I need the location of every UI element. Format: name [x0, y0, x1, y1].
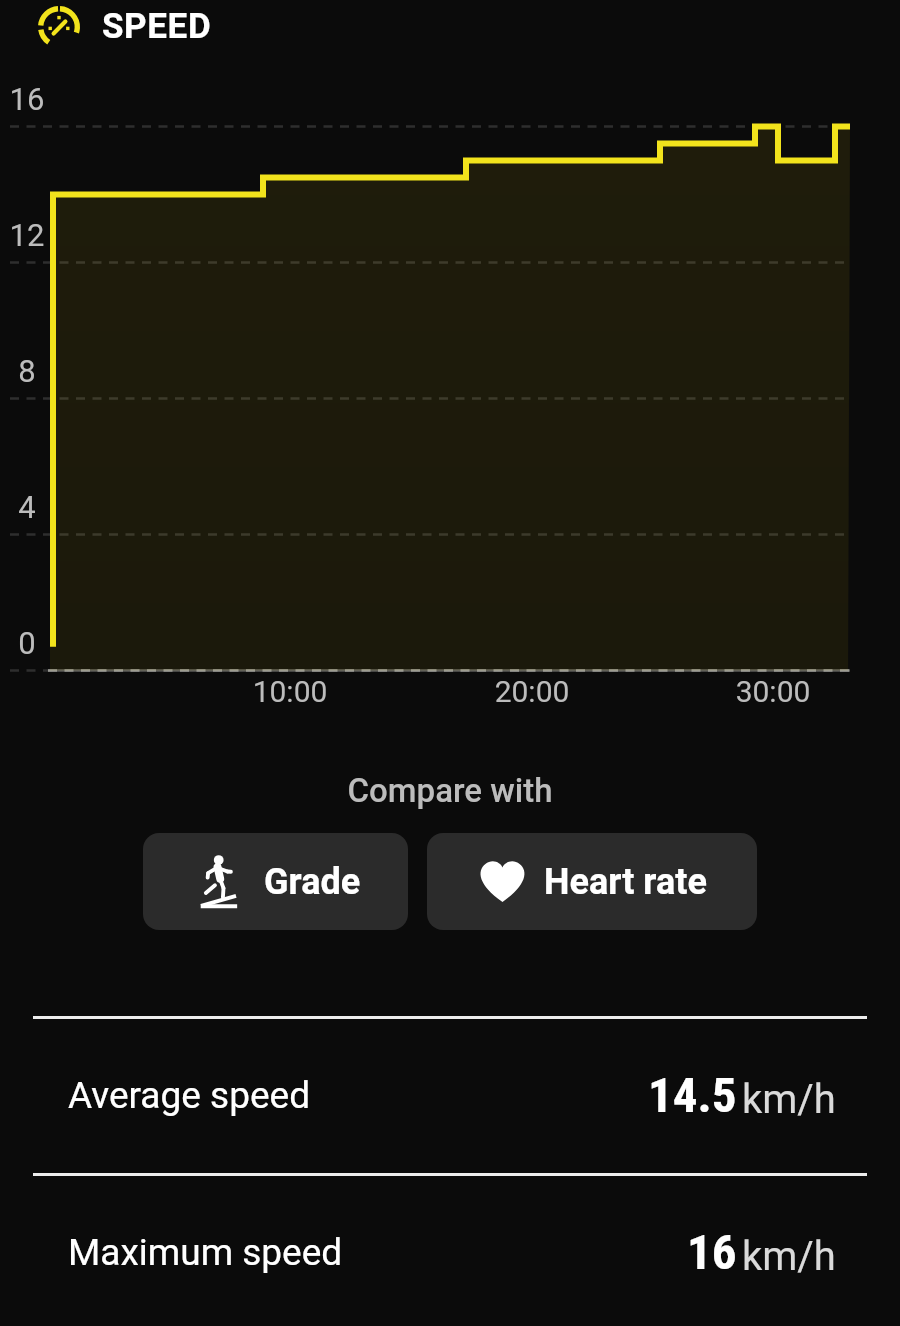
button[interactable]: Average speed: [0, 1017, 900, 1174]
staticText: 30:00: [703, 674, 843, 709]
staticText: 12: [2, 217, 52, 253]
staticText: km/h: [742, 1076, 836, 1123]
staticText: Grade: [264, 861, 361, 903]
staticText: km/h: [742, 1233, 836, 1280]
staticText: 14.5: [648, 1067, 737, 1124]
staticText: 4: [2, 489, 52, 525]
button[interactable]: Grade: [143, 833, 408, 930]
staticText: 20:00: [462, 674, 602, 709]
staticText: 16: [2, 81, 52, 117]
button[interactable]: Heart rate: [427, 833, 757, 930]
button[interactable]: Maximum speed: [0, 1174, 900, 1326]
staticText: Heart rate: [544, 861, 707, 903]
staticText: 8: [2, 353, 52, 389]
staticText: 10:00: [220, 674, 360, 709]
staticText: Compare with: [0, 771, 900, 810]
staticText: Maximum speed: [68, 1231, 343, 1274]
other: Speed: [38, 6, 82, 46]
staticText: 0: [2, 625, 52, 661]
staticText: SPEED: [102, 6, 212, 47]
staticText: 16: [687, 1224, 737, 1281]
staticText: Average speed: [68, 1074, 311, 1117]
